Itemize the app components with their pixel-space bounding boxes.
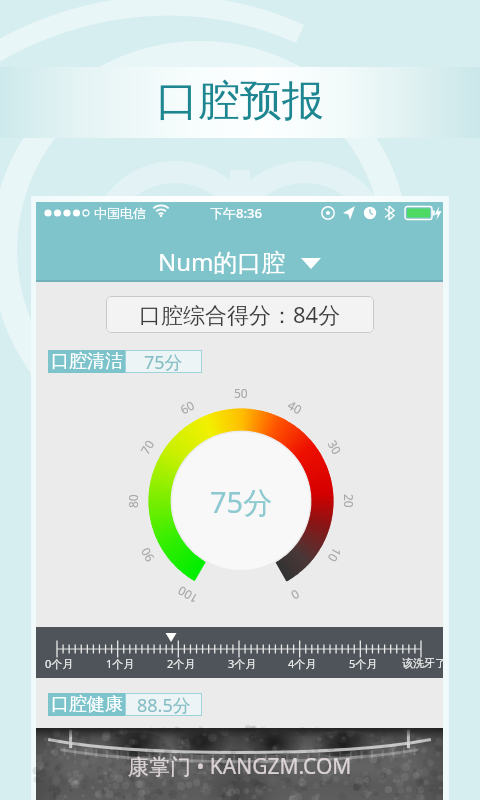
staticText: 88.5分 bbox=[137, 693, 191, 716]
staticText: 0个月 bbox=[45, 656, 74, 671]
staticText: 75分 bbox=[210, 482, 273, 522]
staticText: 中国电信 bbox=[94, 205, 146, 221]
staticText: 80 bbox=[125, 494, 141, 508]
staticText: 0 bbox=[288, 586, 303, 604]
staticText: 1个月 bbox=[106, 656, 135, 671]
staticText: 康掌门 • KANGZM.COM bbox=[128, 752, 352, 781]
staticText: 口腔清洁 bbox=[51, 350, 123, 373]
button[interactable]: 口腔健康 bbox=[48, 693, 202, 716]
staticText: 3个月 bbox=[228, 656, 257, 671]
staticText: 10 bbox=[325, 545, 345, 565]
button[interactable]: Num的口腔 bbox=[36, 245, 443, 278]
button[interactable]: 口腔清洁 bbox=[48, 350, 202, 373]
staticText: 40 bbox=[285, 397, 305, 417]
staticText: 20 bbox=[341, 494, 357, 508]
staticText: 该洗牙了 bbox=[402, 656, 446, 670]
staticText: 60 bbox=[177, 397, 197, 417]
staticText: 口腔预报 bbox=[156, 75, 324, 128]
staticText: 口腔健康 bbox=[51, 693, 123, 716]
staticText: 口腔综合得分：84分 bbox=[139, 299, 341, 329]
staticText: 75分 bbox=[144, 350, 183, 373]
staticText: 70 bbox=[137, 437, 157, 457]
button[interactable]: 口腔综合得分：84分 bbox=[106, 296, 374, 333]
staticText: 50 bbox=[234, 385, 248, 401]
staticText: 2个月 bbox=[167, 656, 196, 671]
staticText: 90 bbox=[137, 545, 157, 565]
staticText: 下午8:36 bbox=[210, 204, 262, 222]
staticText: 5个月 bbox=[349, 656, 378, 671]
staticText: 4个月 bbox=[288, 656, 317, 671]
staticText: Num的口腔 bbox=[158, 245, 286, 278]
staticText: 100 bbox=[174, 583, 201, 607]
staticText: 30 bbox=[325, 437, 345, 457]
